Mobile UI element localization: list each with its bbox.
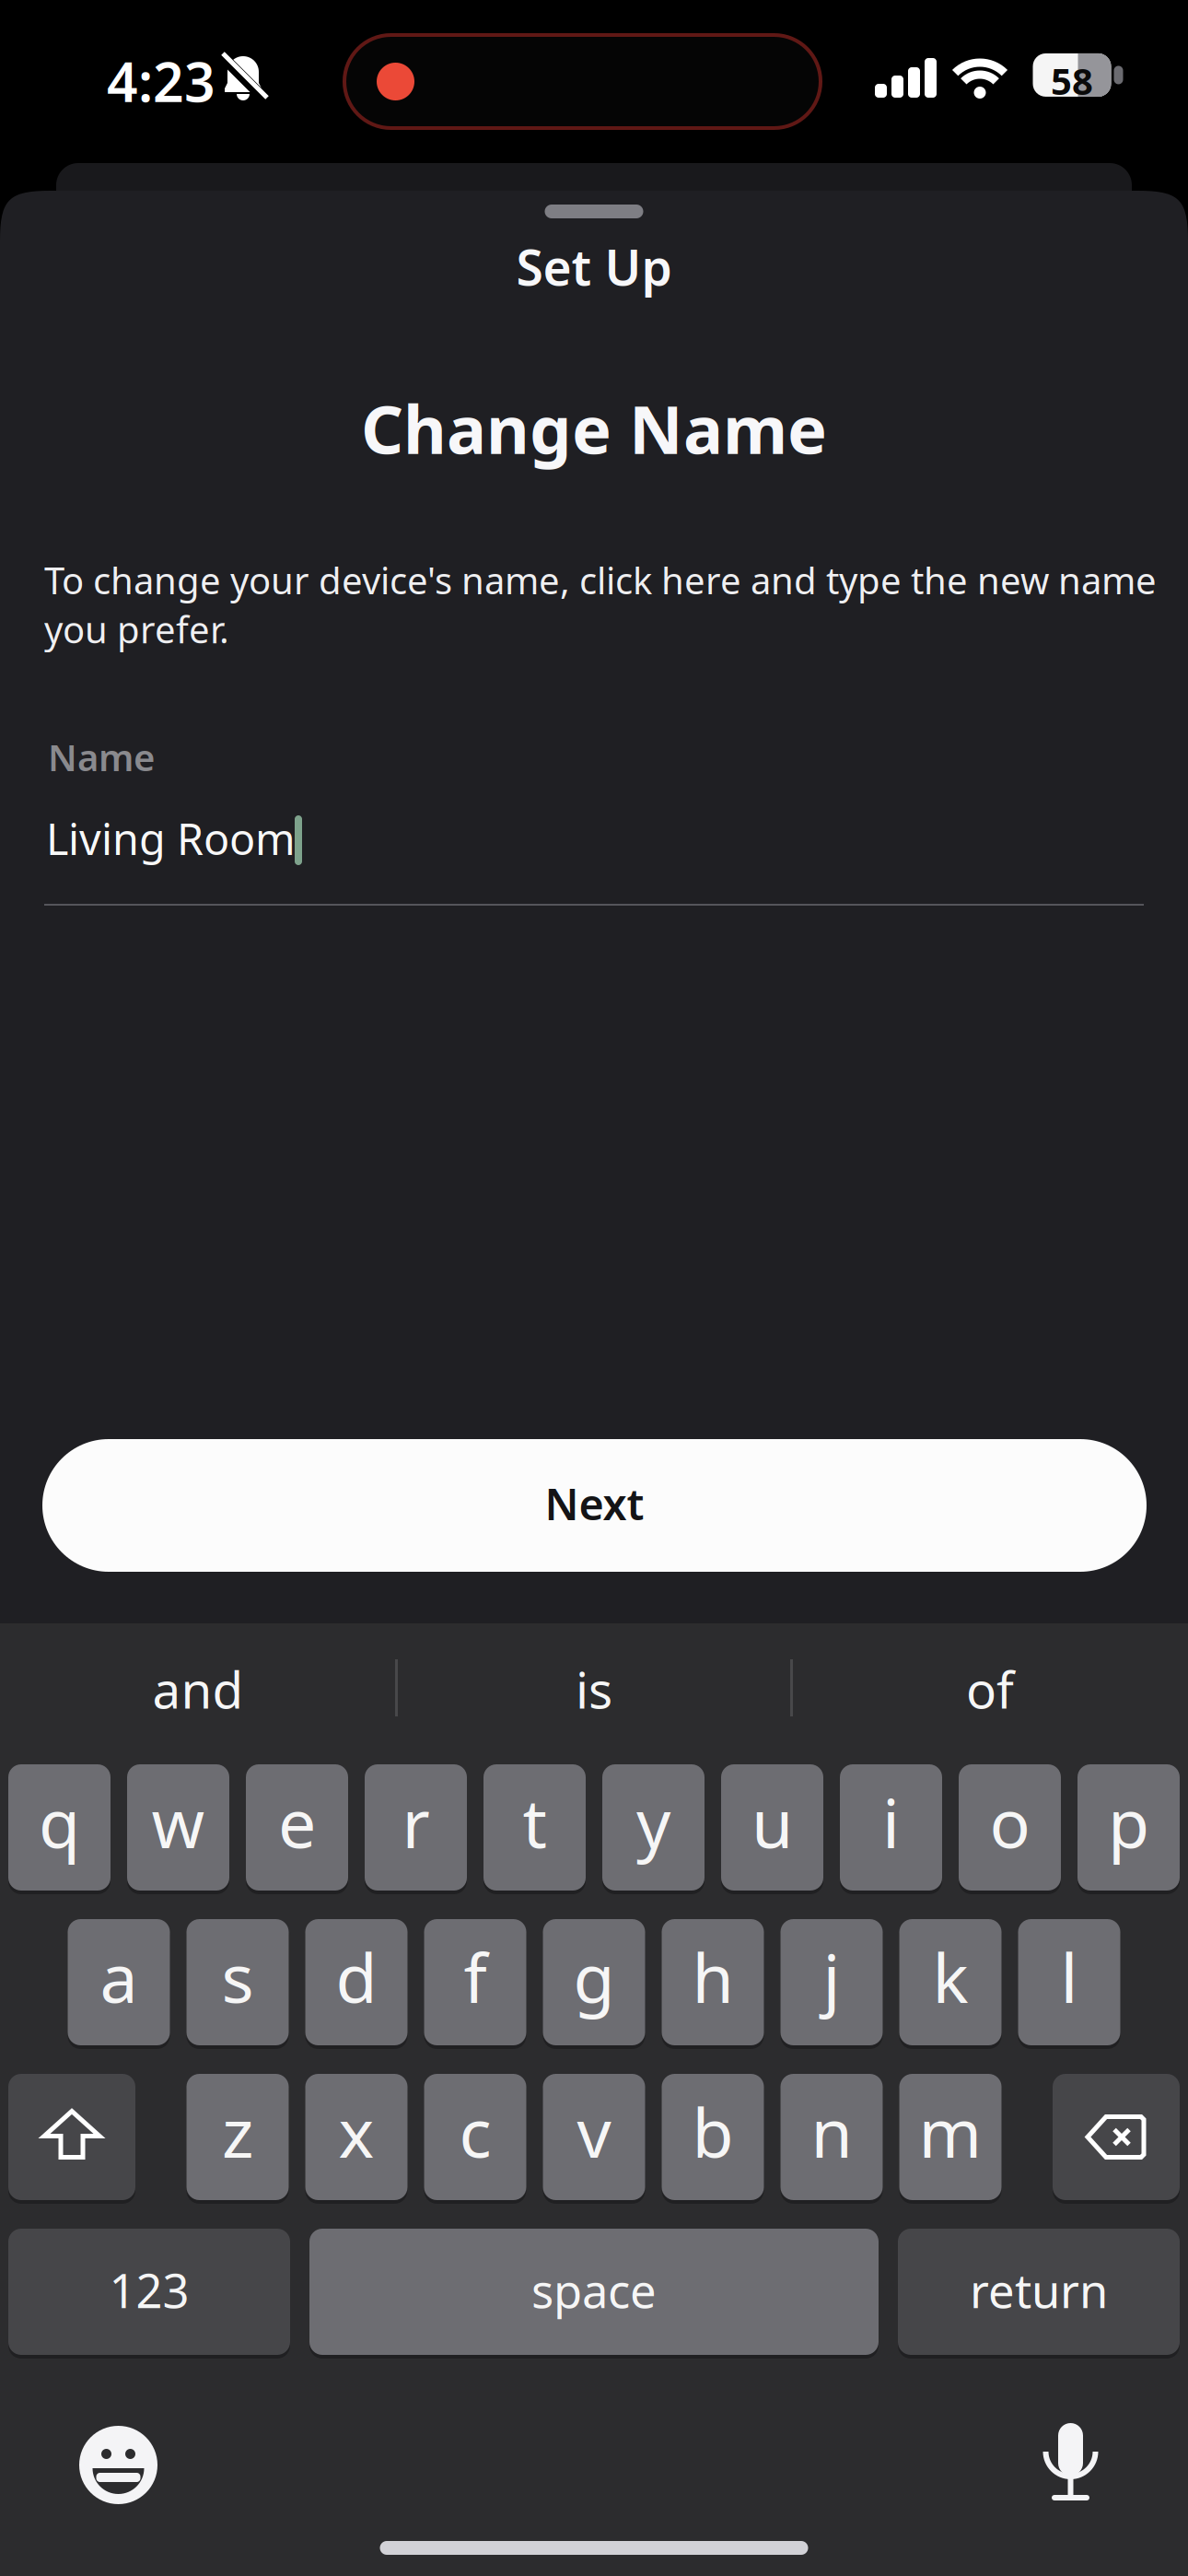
button[interactable]: p — [1077, 1764, 1180, 1891]
staticText: Living Room — [46, 810, 296, 867]
staticText: n — [811, 2087, 852, 2176]
button[interactable]: Next — [42, 1439, 1147, 1572]
button[interactable]: c — [424, 2074, 526, 2200]
button[interactable]: f — [424, 1919, 526, 2045]
staticText: a — [100, 1932, 138, 2022]
button[interactable]: g — [543, 1919, 645, 2045]
staticText: p — [1108, 1777, 1149, 1867]
staticText: is — [576, 1656, 612, 1722]
button[interactable]: Shift — [8, 2074, 135, 2200]
button[interactable]: k — [899, 1919, 1002, 2045]
button[interactable]: m — [899, 2074, 1002, 2200]
staticText: 123 — [109, 2259, 189, 2321]
button[interactable]: x — [305, 2074, 408, 2200]
staticText: Name — [48, 732, 155, 781]
button[interactable]: of — [797, 1656, 1183, 1722]
button[interactable]: t — [483, 1764, 586, 1891]
staticText: i — [882, 1777, 900, 1867]
staticText: 4:23 — [107, 45, 215, 117]
button[interactable]: w — [127, 1764, 229, 1891]
staticText: Set Up — [516, 234, 672, 299]
button[interactable]: Dictate — [1041, 2418, 1101, 2502]
staticText: r — [402, 1777, 430, 1867]
staticText: x — [338, 2087, 374, 2176]
staticText: u — [751, 1777, 793, 1867]
button[interactable]: Emoji — [79, 2426, 157, 2504]
button[interactable]: q — [8, 1764, 111, 1891]
staticText: b — [692, 2087, 734, 2176]
staticText: q — [39, 1777, 80, 1867]
staticText: g — [573, 1932, 615, 2022]
staticText: Next — [545, 1475, 644, 1532]
button[interactable]: 123 — [8, 2229, 290, 2355]
staticText: l — [1060, 1932, 1078, 2022]
button[interactable]: space — [309, 2229, 879, 2355]
staticText: j — [823, 1932, 840, 2022]
button[interactable]: l — [1018, 1919, 1120, 2045]
button[interactable]: u — [721, 1764, 823, 1891]
button[interactable]: is — [401, 1656, 787, 1722]
button[interactable]: a — [68, 1919, 170, 2045]
staticText: To change your device's name, click here… — [44, 556, 1157, 653]
button[interactable]: return — [898, 2229, 1180, 2355]
button[interactable]: r — [365, 1764, 467, 1891]
button[interactable]: o — [959, 1764, 1061, 1891]
button[interactable]: d — [305, 1919, 408, 2045]
button[interactable]: e — [246, 1764, 348, 1891]
staticText: s — [221, 1932, 254, 2022]
staticText: k — [932, 1932, 968, 2022]
staticText: v — [577, 2087, 611, 2176]
staticText: f — [464, 1932, 487, 2022]
staticText: space — [531, 2259, 657, 2321]
button[interactable]: Delete — [1053, 2074, 1180, 2200]
staticText: return — [970, 2259, 1108, 2321]
button[interactable]: z — [186, 2074, 289, 2200]
staticText: o — [990, 1777, 1030, 1867]
staticText: y — [636, 1777, 670, 1867]
staticText: m — [919, 2087, 982, 2176]
button[interactable]: j — [780, 1919, 883, 2045]
button[interactable]: and — [5, 1656, 391, 1722]
staticText: c — [459, 2087, 491, 2176]
button[interactable]: Living Room — [44, 809, 1144, 910]
button[interactable]: v — [543, 2074, 645, 2200]
staticText: t — [523, 1777, 547, 1867]
staticText: of — [966, 1656, 1014, 1722]
button[interactable]: b — [662, 2074, 764, 2200]
staticText: z — [222, 2087, 253, 2176]
button[interactable]: y — [602, 1764, 705, 1891]
staticText: and — [152, 1656, 244, 1722]
staticText: w — [151, 1777, 205, 1867]
button[interactable]: h — [662, 1919, 764, 2045]
staticText: 58 — [1051, 56, 1093, 105]
staticText: h — [692, 1932, 734, 2022]
staticText: d — [336, 1932, 377, 2022]
button[interactable]: n — [780, 2074, 883, 2200]
button[interactable]: s — [186, 1919, 289, 2045]
staticText: Change Name — [361, 384, 827, 472]
button[interactable]: i — [840, 1764, 942, 1891]
staticText: e — [278, 1777, 316, 1867]
